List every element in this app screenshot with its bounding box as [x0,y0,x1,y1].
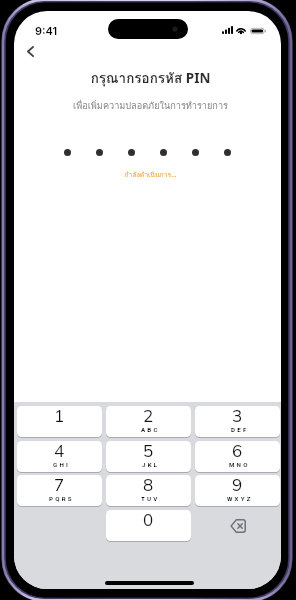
staticText: 9:41 [35,24,58,37]
staticText: เพื่อเพิ่มความปลอดภัยในการทำรายการ [17,98,281,113]
staticText: JKL [142,461,160,468]
staticText: WXYZ [227,495,253,502]
button[interactable]: Delete [195,510,280,541]
button[interactable]: 0 [106,510,191,541]
staticText: 4 [54,441,65,461]
staticText: 1 [54,406,65,426]
staticText: กำลังดำเนินการ... [17,169,281,180]
staticText: 8 [143,475,154,495]
staticText: MNO [229,461,250,468]
staticText: กรุณากรอกรหัส PIN [17,67,281,88]
staticText: 9 [232,475,243,495]
staticText: GHI [53,461,70,468]
button[interactable]: 4 [17,441,102,472]
staticText: 2 [143,406,154,426]
button[interactable]: 6 [195,441,280,472]
staticText: 0 [143,510,154,530]
staticText: PQRS [49,495,74,502]
button[interactable]: 7 [17,475,102,506]
staticText: 5 [143,441,154,461]
button[interactable]: Back [18,39,43,64]
staticText: DEF [231,426,249,433]
staticText: 6 [232,441,243,461]
staticText: 3 [232,406,243,426]
button[interactable]: 2 [106,406,191,437]
staticText: ABC [141,426,160,433]
button[interactable]: 1 [17,406,102,437]
staticText: 7 [54,475,65,495]
button[interactable]: 9 [195,475,280,506]
button[interactable]: 5 [106,441,191,472]
button[interactable]: 8 [106,475,191,506]
staticText: TUV [141,495,160,502]
button[interactable]: 3 [195,406,280,437]
